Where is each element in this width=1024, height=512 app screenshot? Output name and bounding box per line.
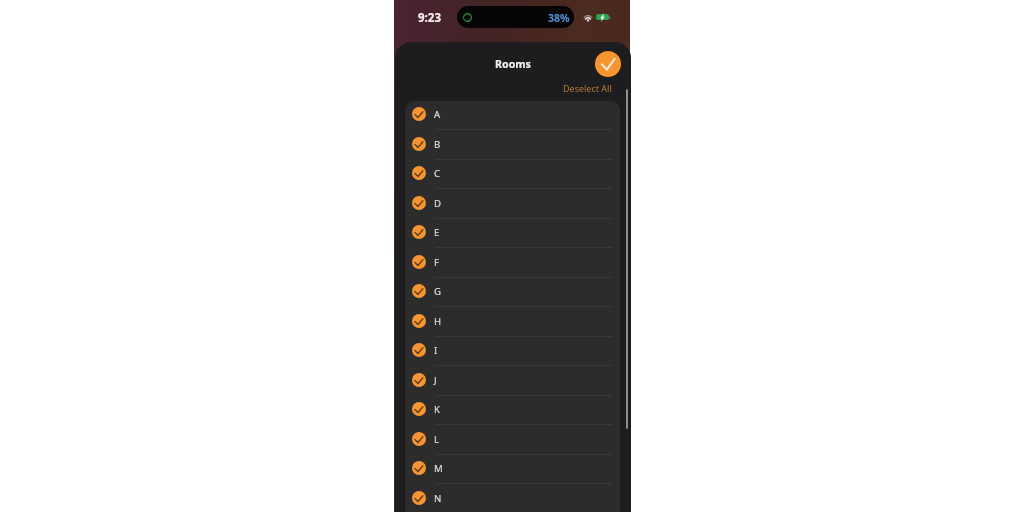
button[interactable]: N xyxy=(405,485,620,512)
staticText: K xyxy=(434,403,440,416)
button[interactable]: D xyxy=(405,190,620,220)
staticText: L xyxy=(434,433,440,446)
staticText: 9:23 xyxy=(418,10,441,26)
staticText: A xyxy=(434,108,441,121)
button[interactable]: Deselect All xyxy=(561,81,614,95)
button[interactable]: J xyxy=(405,367,620,397)
button[interactable]: A xyxy=(405,101,620,131)
button[interactable]: I xyxy=(405,337,620,367)
staticText: N xyxy=(434,492,442,505)
staticText: D xyxy=(434,197,442,210)
button[interactable]: M xyxy=(405,455,620,485)
staticText: H xyxy=(434,315,442,328)
staticText: M xyxy=(434,462,443,475)
staticText: B xyxy=(434,138,441,151)
staticText: F xyxy=(434,256,439,269)
button[interactable]: L xyxy=(405,426,620,456)
button[interactable]: Confirm selection xyxy=(595,51,621,77)
button[interactable]: F xyxy=(405,249,620,279)
staticText: E xyxy=(434,226,440,239)
staticText: 38% xyxy=(548,11,570,25)
button[interactable]: K xyxy=(405,396,620,426)
staticText: I xyxy=(434,344,438,357)
staticText: C xyxy=(434,167,441,180)
staticText: Deselect All xyxy=(563,82,612,94)
staticText: Rooms xyxy=(395,57,631,71)
button[interactable]: C xyxy=(405,160,620,190)
staticText: J xyxy=(434,374,437,387)
button[interactable]: B xyxy=(405,131,620,161)
button[interactable]: H xyxy=(405,308,620,338)
button[interactable]: G xyxy=(405,278,620,308)
button[interactable]: E xyxy=(405,219,620,249)
staticText: G xyxy=(434,285,441,298)
